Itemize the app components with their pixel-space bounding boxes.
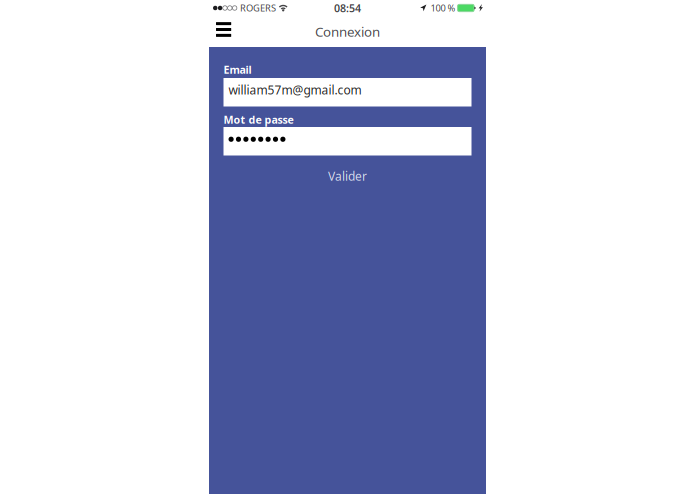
- staticText: william57m@gmail.com: [228, 82, 361, 98]
- button[interactable]: Mot de passe: [223, 127, 471, 155]
- button[interactable]: william57m@gmail.com: [223, 78, 471, 106]
- staticText: Connexion: [315, 23, 380, 40]
- button[interactable]: Valider: [223, 167, 471, 184]
- staticText: Valider: [328, 168, 367, 184]
- button[interactable]: Menu: [209, 16, 240, 47]
- staticText: Mot de passe: [223, 112, 293, 127]
- staticText: ROGERS: [240, 2, 276, 14]
- staticText: Email: [223, 62, 251, 77]
- staticText: 100 %: [431, 2, 456, 14]
- staticText: 08:54: [334, 1, 361, 15]
